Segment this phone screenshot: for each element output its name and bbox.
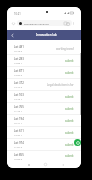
staticText: 11:01 0 bbox=[14, 145, 23, 148]
button[interactable]: Tabs bbox=[62, 20, 69, 27]
staticText: submit bbox=[65, 71, 74, 75]
button[interactable]: Back bbox=[9, 32, 16, 39]
button[interactable]: Lot 765 bbox=[7, 103, 81, 115]
button[interactable]: Account bbox=[64, 20, 71, 27]
staticText: 14:19 1 bbox=[14, 97, 23, 100]
button[interactable]: Lot 871 bbox=[7, 67, 81, 79]
button[interactable]: Lot 855 bbox=[7, 151, 81, 161]
staticText: submit bbox=[65, 119, 74, 123]
staticText: 11:15 1 bbox=[14, 109, 23, 112]
button[interactable]: Home bbox=[42, 161, 49, 168]
staticText: 14:17 0 bbox=[14, 85, 23, 88]
staticText: 10:21 bbox=[14, 12, 21, 16]
staticText: submit bbox=[65, 107, 74, 111]
staticText: Lot 283 bbox=[14, 57, 24, 61]
staticText: 14:47 1 bbox=[14, 133, 23, 136]
button[interactable]: Chat on WhatsApp bbox=[74, 139, 81, 146]
button[interactable]: Lot 481 bbox=[7, 43, 81, 55]
staticText: 12:19 0 bbox=[14, 49, 23, 52]
staticText: Lot 974 bbox=[14, 141, 24, 145]
button[interactable]: Lot 194 bbox=[7, 115, 81, 127]
button[interactable]: Lot 611 bbox=[7, 127, 81, 139]
staticText: Lot 372 bbox=[14, 81, 24, 85]
button[interactable]: Recents bbox=[25, 161, 32, 168]
button[interactable]: Back bbox=[59, 161, 66, 168]
button[interactable]: Lot 103 bbox=[7, 91, 81, 103]
staticText: Legal deals item is for bbox=[47, 83, 74, 87]
staticText: Lot 855 bbox=[14, 153, 24, 157]
staticText: working transf bbox=[56, 47, 74, 51]
staticText: Lot 194 bbox=[14, 117, 24, 121]
staticText: Lot 871 bbox=[14, 69, 24, 73]
staticText: Innovation lab bbox=[36, 33, 57, 37]
staticText: submit bbox=[65, 131, 74, 135]
staticText: Lot 765 bbox=[14, 105, 24, 109]
staticText: submit bbox=[65, 143, 74, 147]
button[interactable]: Lot 372 bbox=[7, 79, 81, 91]
staticText: 12:52 0 bbox=[14, 157, 23, 160]
button[interactable]: More options bbox=[70, 20, 77, 27]
button[interactable]: Lot 974 bbox=[7, 139, 81, 151]
staticText: Lot 611 bbox=[14, 129, 24, 133]
staticText: submit bbox=[65, 59, 74, 63]
staticText: 14:09 1 bbox=[14, 61, 23, 64]
staticText: 14:27 0 bbox=[14, 73, 23, 76]
button[interactable]: penfidiquan.net/#/tab bbox=[17, 20, 72, 26]
staticText: Lot 481 bbox=[14, 45, 24, 49]
staticText: Lot 103 bbox=[14, 93, 24, 97]
button[interactable]: Lot 283 bbox=[7, 55, 81, 67]
staticText: 12:11 1 bbox=[14, 121, 23, 124]
staticText: penfidiquan.net/#/tab bbox=[24, 22, 49, 25]
staticText: submit bbox=[65, 95, 74, 99]
button[interactable]: Reload bbox=[10, 20, 17, 27]
staticText: submit bbox=[65, 154, 74, 158]
